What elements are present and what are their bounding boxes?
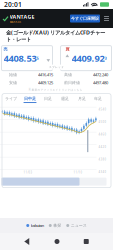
staticText: 始値 [9,72,17,77]
button[interactable]: 日中足 [20,93,39,105]
button[interactable]: Home [54,239,59,244]
staticText: 4409.92 [71,52,104,64]
staticText: 20:01 [4,0,22,9]
staticText: 4408.53 [3,52,36,64]
staticText: VANTAGE [9,13,34,20]
button[interactable]: Vantage Markets [3,13,34,24]
button[interactable]: ニュース [66,223,87,228]
staticText: 11/03 [23,171,32,174]
staticText: 4380 [98,158,106,161]
staticText: 売 [3,47,7,52]
staticText: 日中足 [24,96,36,101]
button[interactable]: ※ 最新のアフィリエイトリンクはこちら [2,87,109,93]
staticText: MARKETS [9,20,20,24]
button[interactable]: 月足 [73,93,90,105]
button[interactable]: 週足 [56,93,73,105]
staticText: 4500 [98,120,106,124]
button[interactable]: Back [24,238,30,245]
button[interactable]: 今すぐ口座開設 [70,14,100,22]
staticText: 4472.240 [93,72,108,77]
staticText: 5 [36,55,38,61]
staticText: 11/10 [73,171,82,174]
button[interactable]: Chart range [1,178,106,186]
staticText: 高値 [64,72,72,77]
staticText: kabutan [31,223,44,228]
staticText: 日足 [44,96,52,101]
button[interactable]: 年足 [90,93,105,105]
staticText: 4497.480 [93,80,108,85]
staticText: 株探 [53,223,61,228]
staticText: 4409.125 [38,80,53,85]
staticText: 金(ゴールド/XAU) リアルタイムCFDチャート・レート [6,29,105,43]
staticText: 年足 [94,96,102,101]
staticText: ※ 最新のアフィリエイトリンクはこちら [28,88,82,91]
staticText: スプレッド [49,65,64,69]
staticText: 月足 [78,96,86,101]
staticText: ニュース [71,223,87,228]
staticText: 4340 [98,170,106,174]
button[interactable]: ライブ [1,93,20,105]
staticText: 4416.415 [38,72,53,77]
staticText: 週足 [61,96,69,101]
button[interactable]: 株探 [49,223,61,228]
staticText: 前日終値 [64,80,80,85]
staticText: 4460 [98,133,106,136]
staticText: 4420 [98,145,106,149]
button[interactable]: Ad options [103,15,110,22]
staticText: ライブ [5,96,17,101]
staticText: 今すぐ口座開設 [71,16,99,21]
staticText: 4540 [98,108,106,111]
button[interactable]: Recent apps [84,239,89,244]
staticText: 安値 [9,80,17,85]
button[interactable]: 日足 [39,93,56,105]
staticText: 3 [104,55,106,61]
staticText: 買 [65,47,69,52]
button[interactable]: kabutan [26,223,44,228]
